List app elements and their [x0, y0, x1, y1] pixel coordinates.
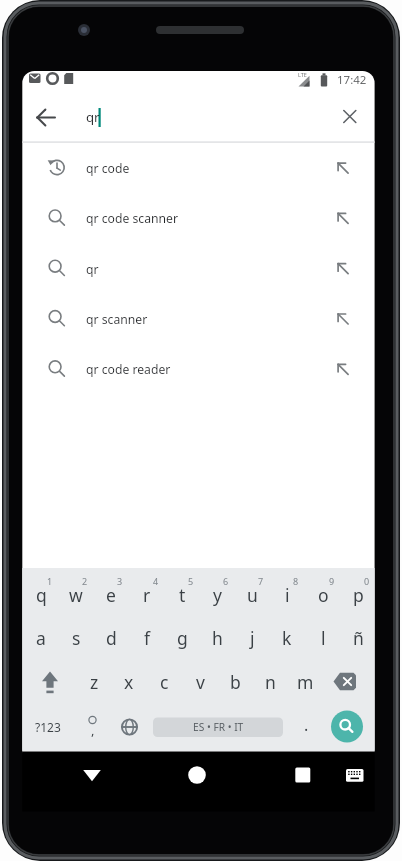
- button[interactable]: [76, 660, 111, 703]
- button[interactable]: [94, 617, 129, 660]
- button[interactable]: [129, 617, 164, 660]
- button[interactable]: [305, 574, 340, 617]
- staticText: 6: [223, 575, 229, 587]
- button[interactable]: [199, 574, 234, 617]
- staticText: 0: [364, 575, 370, 587]
- button[interactable]: [235, 574, 270, 617]
- staticText: qr code reader: [86, 361, 171, 378]
- staticText: ?123: [35, 719, 61, 735]
- button[interactable]: [59, 617, 94, 660]
- staticText: d: [106, 626, 117, 650]
- button[interactable]: [75, 703, 111, 751]
- staticText: q: [36, 583, 47, 607]
- staticText: 4: [153, 575, 159, 587]
- staticText: r: [143, 583, 151, 607]
- button[interactable]: [147, 660, 182, 703]
- staticText: g: [177, 626, 188, 650]
- button[interactable]: [217, 660, 252, 703]
- button[interactable]: [111, 660, 146, 703]
- staticText: x: [124, 670, 134, 694]
- button[interactable]: [253, 660, 288, 703]
- staticText: f: [144, 626, 151, 650]
- staticText: y: [213, 583, 222, 607]
- button[interactable]: [270, 574, 305, 617]
- staticText: l: [321, 626, 326, 650]
- staticText: w: [69, 583, 83, 607]
- staticText: 5: [188, 575, 194, 587]
- button[interactable]: [177, 755, 217, 795]
- button[interactable]: [337, 757, 373, 793]
- button[interactable]: [22, 294, 378, 344]
- staticText: e: [106, 583, 116, 607]
- button[interactable]: [94, 574, 129, 617]
- staticText: qr: [86, 261, 99, 278]
- staticText: qr code: [86, 160, 130, 177]
- button[interactable]: [305, 617, 340, 660]
- staticText: b: [230, 670, 241, 694]
- button[interactable]: [199, 617, 234, 660]
- staticText: qr: [86, 108, 100, 126]
- staticText: j: [250, 626, 255, 650]
- staticText: k: [282, 626, 292, 650]
- button[interactable]: [327, 705, 369, 749]
- button[interactable]: [72, 755, 112, 795]
- staticText: ,: [91, 721, 95, 739]
- button[interactable]: [164, 574, 199, 617]
- staticText: s: [72, 626, 81, 650]
- button[interactable]: [22, 344, 378, 394]
- button[interactable]: [22, 244, 378, 294]
- button[interactable]: [23, 617, 58, 660]
- staticText: .: [304, 714, 309, 736]
- button[interactable]: [235, 617, 270, 660]
- staticText: LTE: [298, 71, 307, 78]
- staticText: t: [179, 583, 186, 607]
- button[interactable]: [340, 574, 375, 617]
- staticText: qr code scanner: [86, 210, 178, 227]
- button[interactable]: [22, 143, 378, 193]
- button[interactable]: [129, 574, 164, 617]
- button[interactable]: [23, 574, 58, 617]
- button[interactable]: [70, 98, 320, 138]
- button[interactable]: [22, 193, 378, 243]
- staticText: u: [247, 583, 258, 607]
- staticText: 1: [47, 575, 53, 587]
- staticText: c: [160, 670, 169, 694]
- button[interactable]: [28, 100, 64, 136]
- staticText: o: [318, 583, 329, 607]
- button[interactable]: [59, 574, 94, 617]
- button[interactable]: [288, 660, 323, 703]
- staticText: 9: [329, 575, 335, 587]
- staticText: qr scanner: [86, 311, 148, 328]
- button[interactable]: [164, 617, 199, 660]
- staticText: 8: [293, 575, 299, 587]
- staticText: ñ: [353, 626, 364, 650]
- staticText: m: [297, 670, 314, 694]
- button[interactable]: [150, 703, 286, 751]
- staticText: h: [212, 626, 223, 650]
- staticText: z: [90, 670, 99, 694]
- staticText: ES • FR • IT: [193, 720, 244, 734]
- staticText: v: [196, 670, 205, 694]
- button[interactable]: [332, 100, 368, 136]
- staticText: 7: [258, 575, 264, 587]
- staticText: 2: [82, 575, 88, 587]
- staticText: n: [265, 670, 276, 694]
- button[interactable]: [288, 703, 323, 751]
- button[interactable]: [112, 703, 148, 751]
- button[interactable]: [340, 617, 375, 660]
- staticText: a: [36, 626, 46, 650]
- staticText: 17:42: [337, 72, 367, 88]
- button[interactable]: [182, 660, 217, 703]
- button[interactable]: [325, 660, 371, 703]
- staticText: i: [285, 583, 290, 607]
- button[interactable]: [283, 755, 323, 795]
- button[interactable]: [270, 617, 305, 660]
- staticText: 3: [117, 575, 123, 587]
- button[interactable]: [28, 660, 73, 703]
- button[interactable]: [24, 703, 72, 751]
- staticText: p: [353, 583, 364, 607]
